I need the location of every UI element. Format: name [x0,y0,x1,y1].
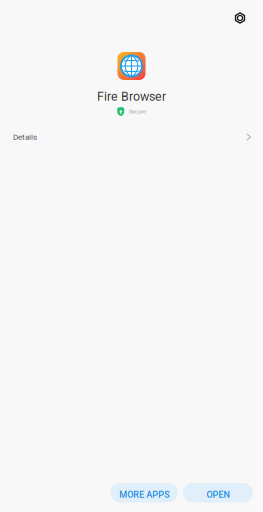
button[interactable]: Settings [227,6,253,30]
button[interactable]: OPEN [183,483,253,502]
button[interactable]: MORE APPS [110,483,178,502]
staticText: OPEN [206,489,229,500]
staticText: Secure [129,108,146,115]
staticText: Fire Browser [97,89,166,104]
button[interactable]: Details [0,128,263,146]
staticText: MORE APPS [119,489,169,500]
staticText: Details [13,132,37,142]
